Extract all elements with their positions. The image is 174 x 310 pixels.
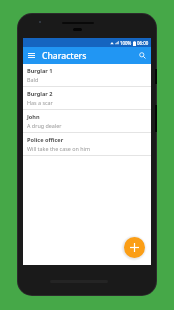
- button[interactable]: Burglar 2: [23, 87, 151, 109]
- staticText: 100%: [120, 40, 132, 46]
- staticText: Burglar 1: [27, 67, 53, 75]
- staticText: Burglar 2: [27, 90, 53, 98]
- button[interactable]: Open navigation drawer: [25, 49, 38, 62]
- button[interactable]: Police officer: [23, 133, 151, 155]
- staticText: A drug dealer: [27, 122, 62, 129]
- button[interactable]: Add character: [124, 237, 145, 258]
- staticText: Police officer: [27, 136, 64, 144]
- button[interactable]: Burglar 1: [23, 64, 151, 86]
- button[interactable]: John: [23, 110, 151, 132]
- staticText: Bald: [27, 76, 39, 83]
- staticText: John: [27, 113, 40, 121]
- staticText: Has a scar: [27, 99, 53, 106]
- staticText: Characters: [42, 50, 87, 62]
- staticText: 06:00: [137, 40, 149, 46]
- staticText: Will take the case on him: [27, 145, 90, 152]
- button[interactable]: Search: [136, 49, 149, 62]
